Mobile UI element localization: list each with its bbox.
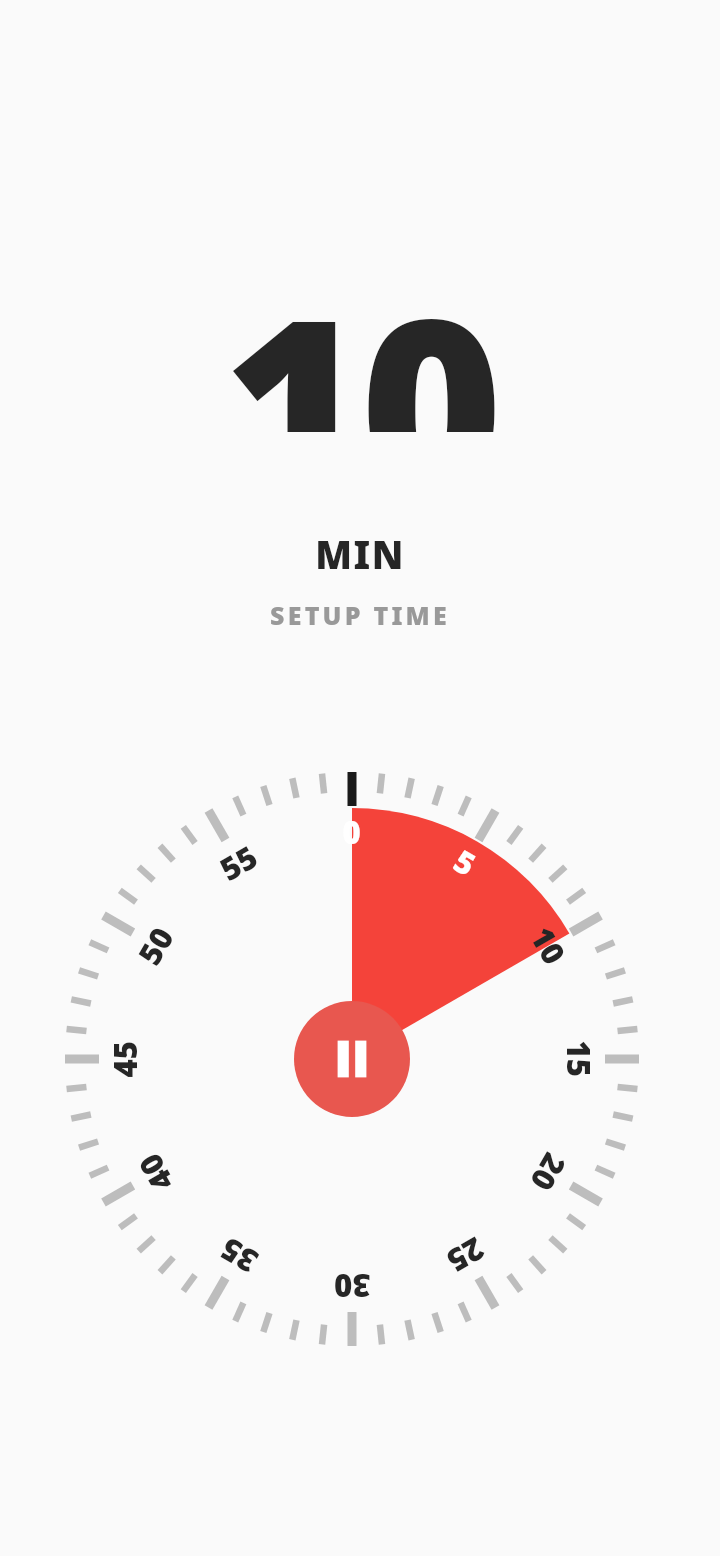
staticText: MIN bbox=[315, 528, 405, 580]
button[interactable]: 10 bbox=[223, 236, 497, 432]
staticText: SETUP TIME bbox=[270, 598, 450, 632]
staticText: 10 bbox=[223, 236, 497, 432]
button[interactable]: Pause timer bbox=[294, 1001, 410, 1117]
